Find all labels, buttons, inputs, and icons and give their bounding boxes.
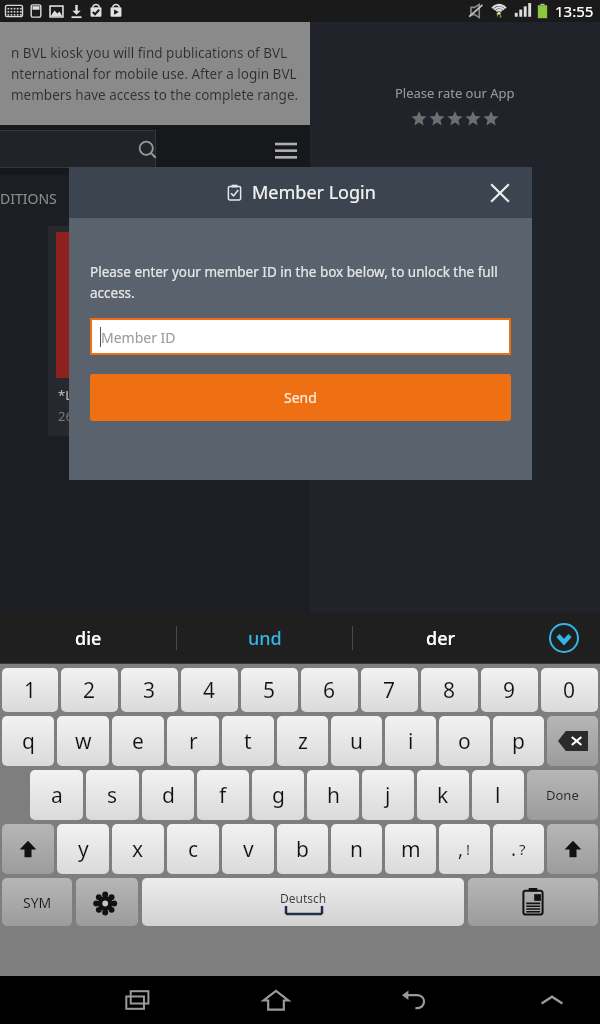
staticText: r [189, 727, 198, 756]
staticText: t [244, 727, 252, 756]
button[interactable]: 9 [481, 668, 538, 712]
staticText: h [327, 781, 340, 810]
button[interactable]: SYM [2, 878, 72, 926]
staticText: c [188, 835, 199, 864]
staticText: s [107, 781, 118, 810]
button[interactable]: 8 [421, 668, 478, 712]
staticText: z [298, 727, 308, 756]
staticText: g [272, 781, 285, 810]
staticText: j [385, 781, 391, 810]
button[interactable]: die [0, 612, 176, 664]
button[interactable]: Recent apps [110, 978, 166, 1022]
staticText: 8 [443, 676, 456, 705]
button[interactable]: b [277, 824, 328, 874]
staticText: a [51, 781, 63, 810]
staticText: b [296, 835, 309, 864]
button[interactable]: h [307, 770, 359, 820]
button[interactable]: n [331, 824, 382, 874]
button[interactable]: *LESEPROBE* BVL Magazin [48, 226, 264, 436]
button[interactable]: y [57, 824, 109, 874]
button[interactable]: q [2, 716, 54, 766]
staticText: 3 [143, 676, 156, 705]
button[interactable] [0, 130, 156, 168]
staticText: Please enter your member ID in the box b… [90, 263, 511, 302]
button[interactable]: 4 [181, 668, 238, 712]
button[interactable]: Search [128, 125, 168, 175]
button[interactable]: e [112, 716, 164, 766]
button[interactable]: Back [386, 978, 442, 1022]
button[interactable]: a [30, 770, 83, 820]
button[interactable]: Done [527, 770, 598, 820]
button[interactable]: 2 [61, 668, 118, 712]
staticText: Member ID [101, 328, 176, 347]
button[interactable]: Backspace [547, 716, 598, 766]
button[interactable]: x [112, 824, 164, 874]
staticText: 6 [323, 676, 336, 705]
button[interactable]: Send [90, 374, 511, 421]
button[interactable]: 1 [2, 668, 58, 712]
staticText: i [408, 727, 414, 756]
button[interactable]: p [493, 716, 544, 766]
button[interactable]: , [439, 824, 490, 874]
staticText: . [511, 836, 517, 862]
staticText: 26.06.2014 [58, 407, 125, 425]
staticText: 5 [263, 676, 276, 705]
staticText: Member Login [252, 180, 376, 205]
staticText: f [219, 781, 227, 810]
button[interactable]: Hide keyboard [524, 978, 580, 1022]
button[interactable]: und [177, 612, 352, 664]
staticText: Done [546, 786, 579, 804]
button[interactable]: r [167, 716, 219, 766]
button[interactable]: f [197, 770, 249, 820]
staticText: 13:55 [555, 1, 594, 21]
staticText: Deutsch [280, 890, 327, 906]
button[interactable]: 0 [541, 668, 598, 712]
button[interactable]: o [439, 716, 490, 766]
staticText: , [458, 836, 464, 862]
staticText: die [75, 626, 102, 651]
staticText: n [350, 835, 363, 864]
button[interactable]: v [222, 824, 274, 874]
staticText: *LESEPROBE* BVL Magazin [58, 386, 225, 404]
button[interactable]: Home [248, 978, 304, 1022]
button[interactable]: i [385, 716, 436, 766]
staticText: d [162, 781, 175, 810]
button[interactable]: Space [142, 878, 464, 926]
button[interactable]: z [277, 716, 328, 766]
button[interactable]: c [167, 824, 219, 874]
button[interactable]: k [417, 770, 469, 820]
button[interactable]: Shift [2, 824, 54, 874]
button[interactable]: Keyboard settings [76, 878, 138, 926]
staticText: 0 [563, 676, 576, 705]
staticText: 1 [24, 676, 37, 705]
button[interactable]: Member ID [90, 318, 511, 355]
staticText: l [495, 781, 501, 810]
staticText: e [132, 727, 144, 756]
button[interactable]: u [331, 716, 382, 766]
button[interactable]: Shift [547, 824, 598, 874]
button[interactable]: . [493, 824, 544, 874]
staticText: Please rate our App [395, 84, 515, 102]
staticText: 7 [383, 676, 396, 705]
button[interactable]: j [362, 770, 414, 820]
staticText: v [243, 835, 254, 864]
button[interactable]: Clipboard [468, 878, 598, 926]
button[interactable]: d [142, 770, 194, 820]
staticText: DITIONS [0, 189, 57, 208]
button[interactable]: 7 [361, 668, 418, 712]
button[interactable]: Close [480, 173, 520, 213]
staticText: n BVL kiosk you will find publications o… [11, 44, 299, 104]
button[interactable]: 5 [241, 668, 298, 712]
button[interactable]: 6 [301, 668, 358, 712]
button[interactable]: g [252, 770, 304, 820]
button[interactable]: der [353, 612, 528, 664]
button[interactable]: s [86, 770, 139, 820]
button[interactable]: m [385, 824, 436, 874]
button[interactable]: 3 [121, 668, 178, 712]
button[interactable]: w [57, 716, 109, 766]
button[interactable]: t [222, 716, 274, 766]
button[interactable]: Expand suggestions [528, 612, 600, 664]
button[interactable]: l [472, 770, 524, 820]
button[interactable]: Menu [262, 125, 310, 175]
